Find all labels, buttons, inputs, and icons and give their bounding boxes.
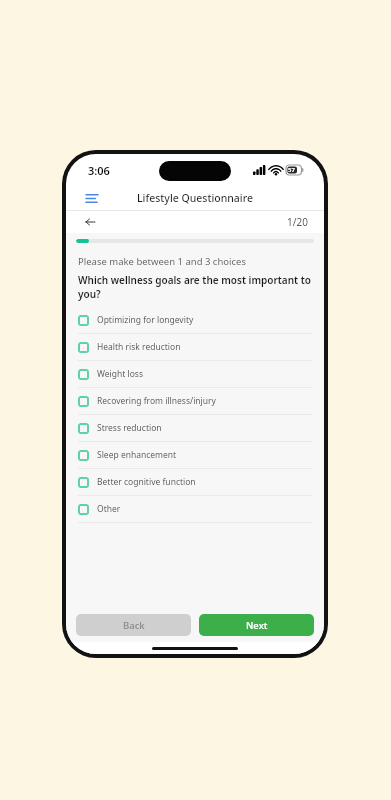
staticText: Weight loss	[97, 368, 143, 380]
button[interactable]: Other	[78, 496, 312, 522]
button[interactable]: Sleep enhancement	[78, 442, 312, 468]
staticText: Optimizing for longevity	[97, 314, 194, 326]
staticText: Better cognitive function	[97, 476, 196, 488]
staticText: Please make between 1 and 3 choices	[78, 255, 246, 268]
staticText: Recovering from illness/injury	[97, 395, 216, 407]
staticText: Stress reduction	[97, 422, 162, 434]
staticText: 57	[288, 166, 295, 174]
button[interactable]: Recovering from illness/injury	[78, 388, 312, 414]
staticText: Next	[246, 619, 268, 632]
button[interactable]: Better cognitive function	[78, 469, 312, 495]
button[interactable]: Health risk reduction	[78, 334, 312, 360]
button[interactable]: Optimizing for longevity	[78, 307, 312, 333]
button[interactable]: Weight loss	[78, 361, 312, 387]
staticText: 3:06	[88, 163, 110, 178]
staticText: Back	[123, 619, 145, 632]
staticText: Which wellness goals are the most import…	[78, 273, 312, 301]
staticText: Health risk reduction	[97, 341, 181, 353]
staticText: Lifestyle Questionnaire	[137, 191, 253, 205]
staticText: Sleep enhancement	[97, 449, 177, 461]
staticText: Other	[97, 503, 121, 515]
button[interactable]: Next	[199, 614, 314, 636]
button[interactable]: Menu	[82, 188, 102, 208]
staticText: 1/20	[287, 215, 308, 229]
button[interactable]: Back	[76, 614, 191, 636]
button[interactable]: Back	[80, 212, 100, 232]
button[interactable]: Stress reduction	[78, 415, 312, 441]
